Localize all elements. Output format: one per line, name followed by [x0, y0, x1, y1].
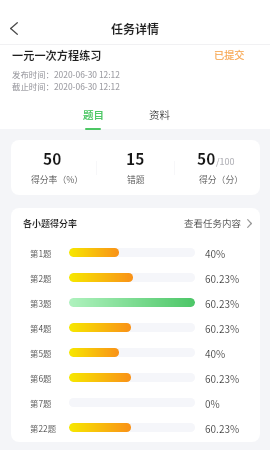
button[interactable]: 题目 [71, 107, 115, 131]
staticText: 0% [205, 396, 220, 410]
staticText: 任务详情 [111, 20, 160, 37]
button[interactable]: 各小题得分率 [23, 208, 252, 238]
button[interactable]: 第4题 [11, 315, 260, 340]
staticText: 60.23% [205, 296, 240, 310]
staticText: 发布时间：2020-06-30 12:12 [12, 68, 120, 80]
button[interactable]: 资料 [137, 107, 181, 131]
staticText: 得分（分） [199, 173, 243, 186]
staticText: 60.23% [205, 421, 240, 435]
staticText: 第6题 [30, 372, 52, 384]
staticText: 截止时间：2020-06-30 12:12 [12, 80, 120, 92]
staticText: 一元一次方程练习 [12, 47, 102, 61]
staticText: 得分率（%） [31, 173, 84, 186]
staticText: 资料 [149, 107, 170, 122]
staticText: 第1题 [30, 247, 52, 259]
staticText: 60.23% [205, 321, 240, 335]
button[interactable]: 第7题 [11, 390, 260, 415]
staticText: 查看任务内容 [184, 216, 242, 230]
staticText: 第5题 [30, 347, 52, 359]
button[interactable]: 第3题 [11, 290, 260, 315]
staticText: 50 [43, 147, 62, 169]
button[interactable]: 第2题 [11, 265, 260, 290]
staticText: 题目 [83, 107, 104, 122]
staticText: 第2题 [30, 272, 52, 284]
button[interactable]: 第5题 [11, 340, 260, 365]
staticText: 第3题 [30, 297, 52, 309]
staticText: 15 [126, 147, 145, 169]
staticText: 已提交 [214, 47, 245, 61]
button[interactable]: 第22题 [11, 415, 260, 440]
button[interactable]: Back [1, 15, 27, 41]
staticText: 50 [197, 147, 216, 169]
staticText: /100 [216, 155, 235, 168]
button[interactable]: 已提交 [214, 47, 245, 61]
staticText: 60.23% [205, 271, 240, 285]
staticText: 第7题 [30, 397, 52, 409]
staticText: 60.23% [205, 371, 240, 385]
staticText: 40% [205, 246, 226, 260]
staticText: 第4题 [30, 322, 52, 334]
staticText: 错题 [127, 173, 145, 186]
staticText: 第22题 [30, 422, 57, 434]
button[interactable]: 第1题 [11, 240, 260, 265]
button[interactable]: 第6题 [11, 365, 260, 390]
staticText: 各小题得分率 [23, 217, 78, 230]
staticText: 40% [205, 346, 226, 360]
